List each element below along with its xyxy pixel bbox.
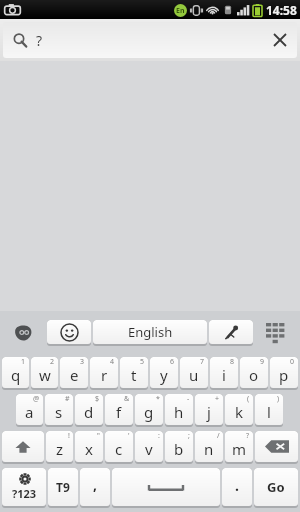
button[interactable]: ! [46,431,73,462]
staticText: & [124,394,130,404]
staticText: h [174,402,184,422]
staticText: d [84,402,94,422]
staticText: 8 [230,357,235,367]
staticText: @ [33,394,40,404]
staticText: ) [277,394,280,404]
staticText: j [207,402,211,422]
staticText: T9 [56,479,70,495]
button[interactable]: @ [16,394,43,425]
staticText: k [235,402,244,422]
button[interactable]: - [165,394,193,425]
staticText: * [156,394,160,404]
staticText: - [187,394,190,404]
staticText: + [215,394,220,404]
staticText: z [56,439,64,459]
staticText: " [97,431,100,441]
staticText: English [128,323,173,341]
button[interactable]: 7 [180,357,208,388]
staticText: p [279,365,289,385]
button[interactable]: 1 [2,357,29,388]
staticText: , [93,475,97,494]
button[interactable] [47,320,91,344]
button[interactable]: : [135,431,163,462]
staticText: q [11,365,21,385]
staticText: y [160,365,168,385]
staticText: o [249,365,259,385]
staticText: 4 [110,357,115,367]
button[interactable]: ? [225,431,253,462]
button[interactable]: & [105,394,133,425]
button[interactable]: Go [254,468,298,506]
staticText: n [204,439,214,459]
button[interactable]: * [135,394,163,425]
button[interactable]: # [45,394,73,425]
staticText: ' [128,431,130,441]
button[interactable]: Clear search [263,23,297,57]
staticText: r [101,365,108,385]
staticText: 3 [80,357,85,367]
button[interactable]: + [195,394,223,425]
button[interactable]: / [195,431,223,462]
button[interactable]: 9 [240,357,268,388]
button[interactable]: 3 [60,357,88,388]
button[interactable]: ) [255,394,283,425]
staticText: 1 [21,357,26,367]
staticText: # [65,394,70,404]
staticText: / [217,431,220,441]
staticText: g [144,402,154,422]
button[interactable]: ; [165,431,193,462]
button[interactable] [209,320,253,344]
staticText: s [55,402,63,422]
button[interactable] [2,431,44,462]
staticText: ! [68,431,70,441]
button[interactable]: 5 [120,357,148,388]
staticText: 0 [290,357,295,367]
button[interactable]: . [222,468,252,506]
staticText: 6 [170,357,175,367]
button[interactable]: 0 [270,357,298,388]
staticText: u [189,365,199,385]
staticText: ( [247,394,250,404]
button[interactable]: ?123 [2,468,46,506]
button[interactable] [255,431,298,462]
staticText: a [25,402,34,422]
staticText: ?123 [12,486,37,501]
staticText: $ [95,394,100,404]
staticText: w [39,365,51,385]
button[interactable]: GO Keyboard [2,311,46,355]
staticText: t [131,365,137,385]
button[interactable]: English [93,320,207,344]
staticText: . [235,476,239,495]
staticText: f [116,402,122,422]
staticText: x [85,439,93,459]
staticText: 9 [260,357,265,367]
staticText: 7 [200,357,205,367]
staticText: 5 [140,357,145,367]
button[interactable] [112,468,220,506]
button[interactable]: " [75,431,103,462]
button[interactable]: 8 [210,357,238,388]
staticText: b [174,439,184,459]
staticText: m [232,439,247,459]
staticText: l [267,402,271,422]
button[interactable]: $ [75,394,103,425]
staticText: 2 [50,357,55,367]
button[interactable]: ' [105,431,133,462]
staticText: e [70,365,79,385]
staticText: ? [246,431,250,441]
staticText: 14:58 [266,2,297,18]
button[interactable]: 6 [150,357,178,388]
staticText: En [176,6,185,16]
button[interactable]: ? [3,22,297,58]
staticText: ; [188,431,190,441]
button[interactable]: , [80,468,110,506]
staticText: : [158,431,160,441]
button[interactable]: 2 [31,357,58,388]
staticText: Go [267,478,285,496]
staticText: i [222,365,226,385]
staticText: c [115,439,123,459]
button[interactable]: T9 [48,468,78,506]
button[interactable]: 4 [90,357,118,388]
button[interactable]: Switch to keypad [254,311,298,355]
button[interactable]: ( [225,394,253,425]
